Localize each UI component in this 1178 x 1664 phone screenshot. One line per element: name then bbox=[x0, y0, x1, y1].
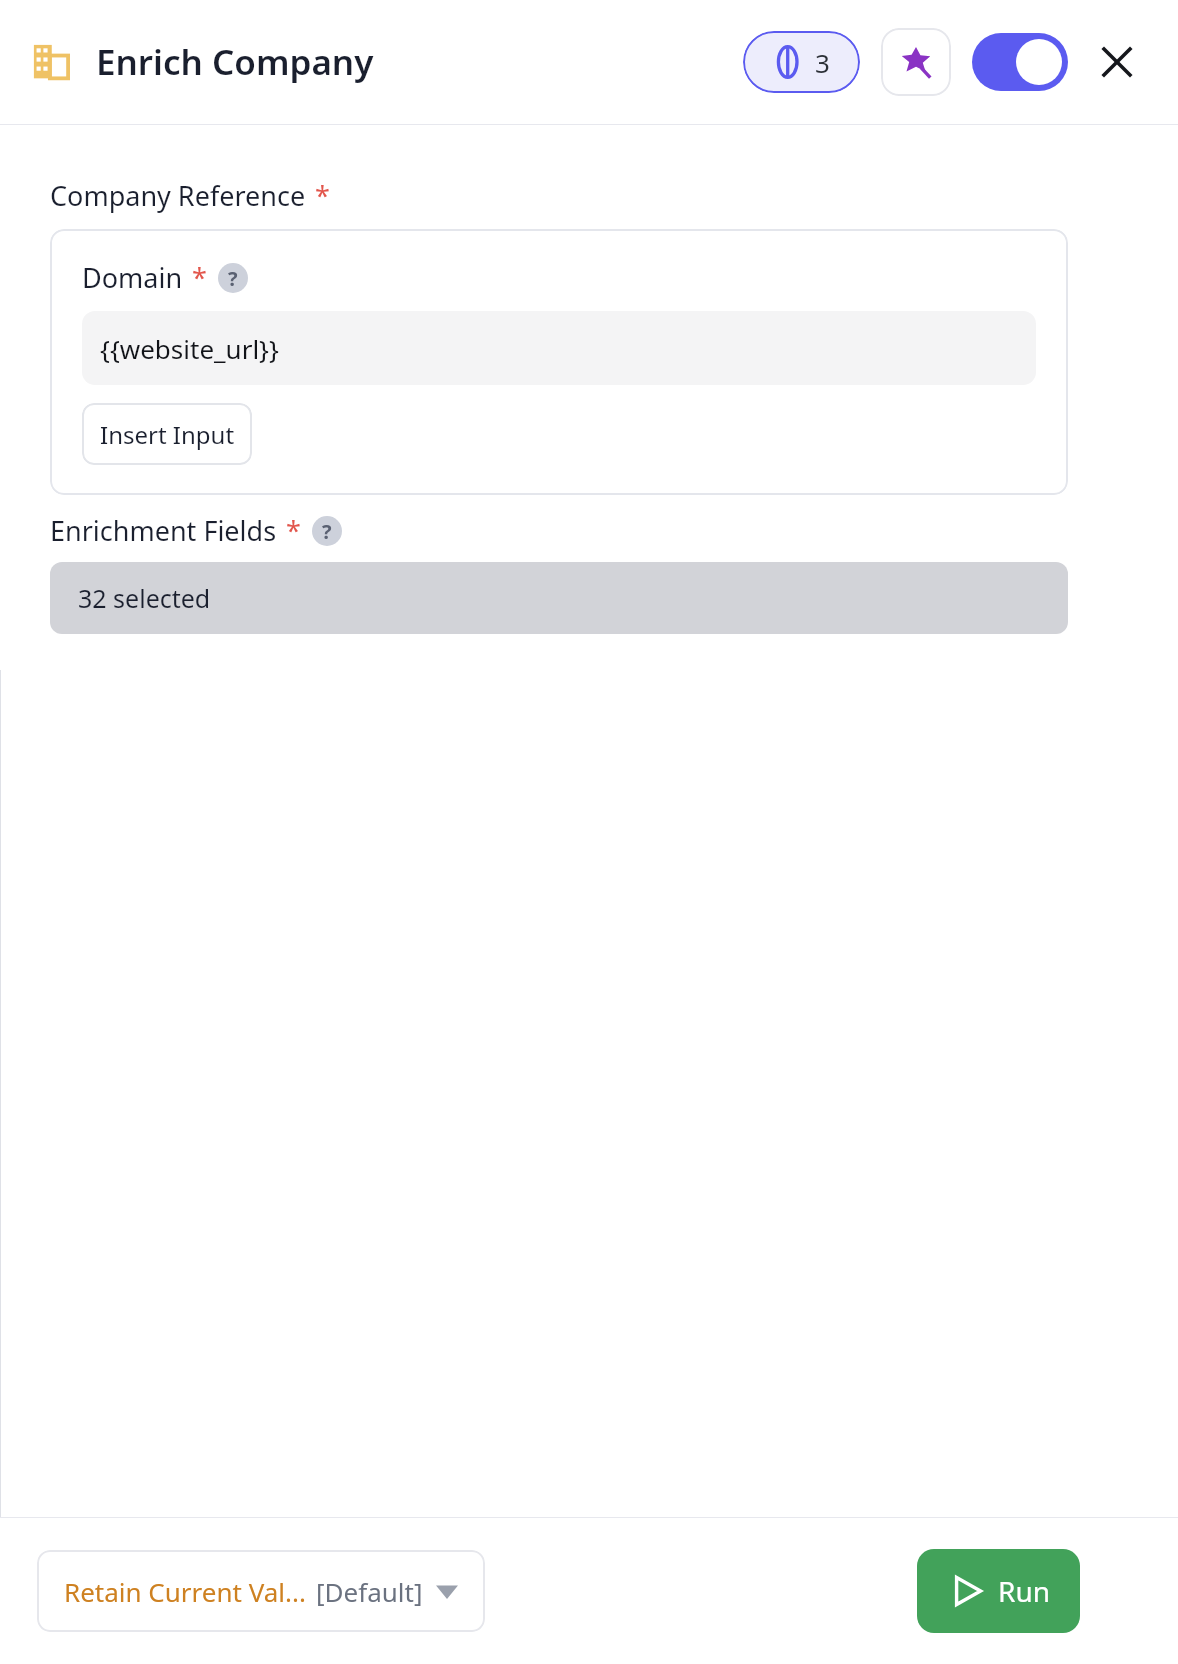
staticText: Enrich Company bbox=[96, 38, 374, 86]
button[interactable]: Help bbox=[312, 516, 342, 546]
button[interactable]: 32 selected bbox=[50, 562, 1068, 634]
staticText: * bbox=[286, 512, 301, 549]
button[interactable]: Help bbox=[218, 263, 248, 293]
staticText: 3 bbox=[815, 45, 830, 80]
button[interactable]: Credits bbox=[743, 31, 860, 93]
staticText: Retain Current Val... bbox=[64, 1574, 306, 1609]
staticText: 32 selected bbox=[78, 581, 211, 615]
staticText: ? bbox=[228, 265, 238, 292]
button[interactable]: {{website_url}} bbox=[82, 311, 1036, 385]
staticText: Domain bbox=[82, 259, 183, 296]
staticText: ? bbox=[322, 518, 332, 545]
button[interactable]: Close bbox=[1086, 31, 1148, 93]
staticText: {{website_url}} bbox=[100, 331, 279, 366]
staticText: Enrichment Fields bbox=[50, 512, 277, 549]
button[interactable]: Retain Current Val... bbox=[37, 1550, 485, 1632]
staticText: Run bbox=[998, 1572, 1051, 1610]
button[interactable]: Insert Input bbox=[82, 403, 252, 465]
staticText: Insert Input bbox=[100, 418, 235, 451]
button[interactable]: Enabled bbox=[972, 33, 1068, 91]
staticText: [Default] bbox=[316, 1574, 423, 1609]
staticText: * bbox=[192, 259, 207, 296]
staticText: * bbox=[315, 177, 330, 214]
button[interactable]: Run bbox=[917, 1549, 1080, 1633]
staticText: Company Reference bbox=[50, 177, 306, 214]
button[interactable]: AI assist bbox=[881, 28, 951, 96]
